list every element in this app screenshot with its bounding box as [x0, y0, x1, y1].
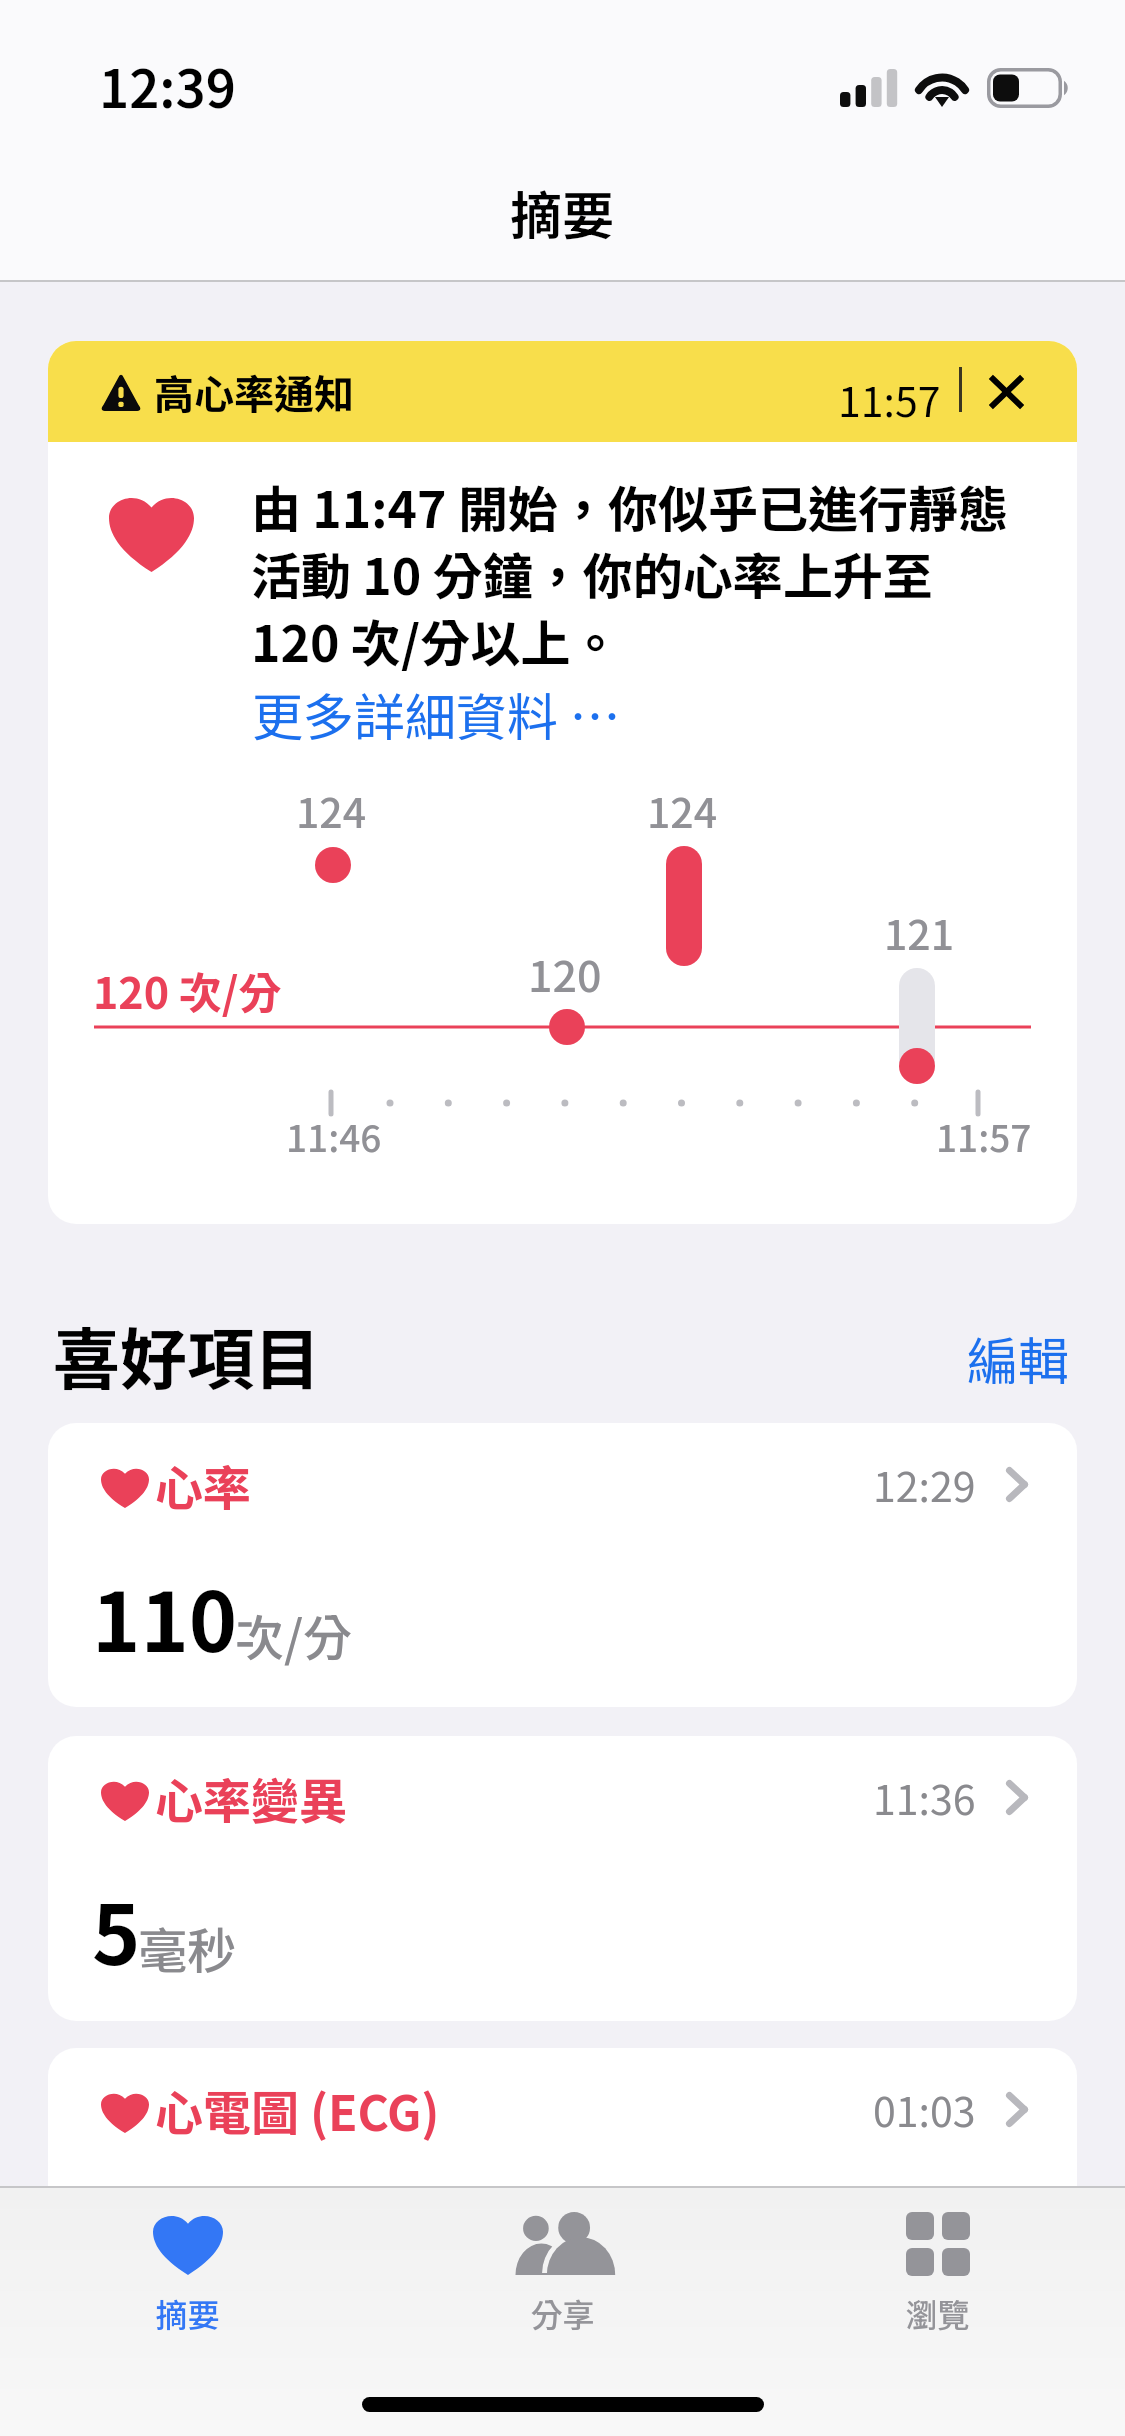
staticText: 更多詳細資料 ⋯	[252, 677, 621, 751]
staticText: 124	[296, 780, 367, 839]
button[interactable]: 心電圖 (ECG)	[48, 2048, 1077, 2248]
button[interactable]: 關閉	[977, 363, 1035, 421]
staticText: 110	[92, 1557, 238, 1676]
button[interactable]: 分享	[375, 2188, 750, 2360]
staticText: 12:39	[99, 48, 236, 123]
button[interactable]: 瀏覽	[750, 2188, 1125, 2360]
staticText: 11:46	[286, 1109, 382, 1163]
staticText: 120 次/分以上。	[251, 604, 621, 671]
staticText: 124	[647, 780, 718, 839]
staticText: 5	[92, 1870, 141, 1989]
staticText: 心率	[155, 1450, 252, 1520]
button[interactable]: 心率	[48, 1423, 1077, 1707]
button[interactable]: 心率變異	[48, 1736, 1077, 2021]
staticText: 次/分	[235, 1599, 353, 1670]
staticText: 高心率通知	[154, 363, 354, 421]
staticText: 摘要	[510, 175, 615, 250]
staticText: 分享	[530, 2290, 595, 2336]
button[interactable]: 編輯	[967, 1321, 1070, 1395]
staticText: 11:36	[873, 1767, 976, 1826]
staticText: 喜好項目	[53, 1306, 321, 1403]
staticText: 120	[528, 942, 602, 1004]
staticText: 心電圖 (ECG)	[155, 2075, 440, 2145]
staticText: 心率變異	[155, 1763, 348, 1833]
staticText: 12:29	[873, 1454, 976, 1513]
button[interactable]: 高心率通知	[48, 341, 1077, 442]
button[interactable]: 摘要	[0, 2188, 375, 2360]
staticText: 11:57	[936, 1109, 1032, 1163]
staticText: 編輯	[967, 1321, 1070, 1395]
button[interactable]: 更多詳細資料 ⋯	[252, 677, 621, 751]
staticText: 由 11:47 開始，你似乎已進行靜態	[251, 470, 1008, 537]
staticText: 120 次/分	[93, 959, 282, 1021]
staticText: 11:57	[838, 369, 941, 428]
staticText: 摘要	[155, 2290, 220, 2336]
staticText: 121	[884, 902, 955, 961]
staticText: 毫秒	[138, 1912, 237, 1983]
staticText: 瀏覽	[905, 2290, 970, 2336]
staticText: 01:03	[873, 2079, 976, 2138]
staticText: 活動 10 分鐘，你的心率上升至	[251, 537, 933, 604]
